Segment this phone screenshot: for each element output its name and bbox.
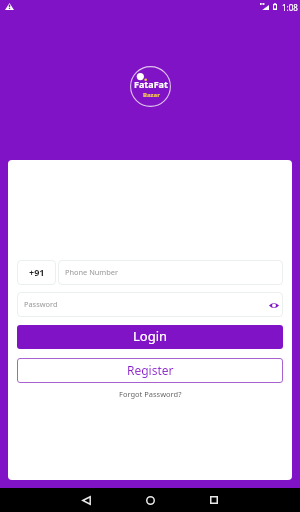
staticText: Bazar (143, 91, 160, 99)
button[interactable]: Register (17, 358, 283, 383)
button[interactable]: +91 (17, 260, 56, 285)
button[interactable]: Login (17, 325, 283, 349)
staticText: FataFat (134, 78, 168, 90)
button[interactable]: Home (138, 488, 162, 512)
button[interactable]: Show password (265, 296, 283, 314)
staticText: Phone Number (65, 267, 119, 277)
staticText: +91 (29, 266, 45, 278)
staticText: Password (24, 299, 58, 309)
button[interactable]: Password (17, 292, 283, 317)
staticText: 1:08 (282, 2, 298, 13)
staticText: Login (133, 327, 168, 345)
button[interactable]: Forgot Password? (119, 389, 182, 399)
staticText: Register (127, 362, 174, 378)
button[interactable]: Phone Number (58, 260, 283, 285)
button[interactable]: Back (74, 488, 98, 512)
button[interactable]: Recents (202, 488, 226, 512)
